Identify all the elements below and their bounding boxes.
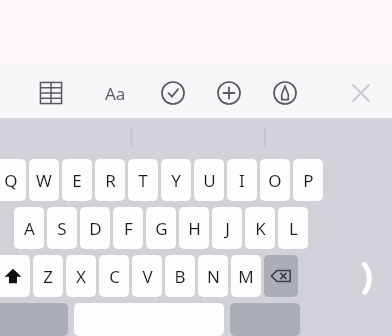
button[interactable]: Shift bbox=[0, 255, 30, 297]
staticText: C bbox=[109, 265, 120, 288]
button[interactable]: F bbox=[113, 207, 143, 249]
button[interactable]: O bbox=[260, 159, 290, 201]
button[interactable]: R bbox=[95, 159, 125, 201]
button[interactable]: W bbox=[29, 159, 59, 201]
button[interactable]: N bbox=[198, 255, 228, 297]
button[interactable]: Next bbox=[356, 258, 382, 298]
staticText: H bbox=[188, 217, 201, 240]
staticText: D bbox=[89, 217, 102, 240]
button[interactable]: B bbox=[165, 255, 195, 297]
button[interactable]: K bbox=[245, 207, 275, 249]
button[interactable]: A bbox=[14, 207, 44, 249]
staticText: Y bbox=[171, 169, 181, 192]
button[interactable]: Y bbox=[161, 159, 191, 201]
button[interactable]: Add bbox=[208, 72, 250, 114]
button[interactable]: Emoji bbox=[230, 303, 300, 336]
staticText: W bbox=[36, 169, 52, 192]
staticText: G bbox=[155, 217, 168, 240]
button[interactable]: Z bbox=[33, 255, 63, 297]
staticText: E bbox=[72, 169, 82, 192]
staticText: J bbox=[225, 217, 230, 240]
staticText: R bbox=[105, 169, 116, 192]
button[interactable]: L bbox=[278, 207, 308, 249]
button[interactable]: V bbox=[132, 255, 162, 297]
button[interactable]: Table bbox=[30, 72, 72, 114]
button[interactable]: G bbox=[146, 207, 176, 249]
staticText: B bbox=[174, 265, 186, 288]
staticText: V bbox=[142, 265, 153, 288]
button[interactable]: U bbox=[194, 159, 224, 201]
staticText: A bbox=[24, 217, 35, 240]
button[interactable]: P bbox=[293, 159, 323, 201]
staticText: Z bbox=[43, 265, 53, 288]
button[interactable]: S bbox=[47, 207, 77, 249]
staticText: S bbox=[57, 217, 67, 240]
button[interactable]: Text format bbox=[94, 72, 136, 114]
staticText: U bbox=[203, 169, 216, 192]
staticText: N bbox=[207, 265, 220, 288]
button[interactable]: D bbox=[80, 207, 110, 249]
button[interactable]: Checklist bbox=[152, 72, 194, 114]
button[interactable]: Backspace bbox=[264, 255, 298, 297]
staticText: O bbox=[268, 169, 282, 192]
button[interactable]: H bbox=[179, 207, 209, 249]
button[interactable]: X bbox=[66, 255, 96, 297]
staticText: X bbox=[76, 265, 86, 288]
button[interactable]: M bbox=[231, 255, 261, 297]
staticText: K bbox=[255, 217, 266, 240]
button[interactable]: T bbox=[128, 159, 158, 201]
staticText: I bbox=[239, 169, 245, 192]
staticText: M bbox=[238, 265, 254, 288]
staticText: Aa bbox=[105, 82, 126, 105]
staticText: T bbox=[138, 169, 148, 192]
button[interactable]: Markup bbox=[264, 72, 306, 114]
staticText: Q bbox=[4, 169, 18, 192]
staticText: P bbox=[303, 169, 314, 192]
button[interactable]: I bbox=[227, 159, 257, 201]
staticText: F bbox=[124, 217, 133, 240]
staticText: L bbox=[289, 217, 298, 240]
button[interactable]: C bbox=[99, 255, 129, 297]
button[interactable]: J bbox=[212, 207, 242, 249]
button[interactable]: Q bbox=[0, 159, 26, 201]
button[interactable]: E bbox=[62, 159, 92, 201]
button[interactable]: Close bbox=[340, 72, 382, 114]
